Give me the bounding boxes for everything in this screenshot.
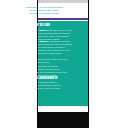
staticText: Leave it on for three minutes and then r… bbox=[38, 39, 73, 54]
staticText: STEP 1 bbox=[40, 28, 52, 31]
staticText: HOW TO USE bbox=[31, 23, 61, 27]
staticText: NATURAL INGREDIENTS bbox=[26, 76, 66, 79]
staticText: Contributes to the maintenance of the na… bbox=[19, 5, 69, 14]
staticText: STEP 2 bbox=[40, 39, 52, 42]
staticText: Apply a small amount to damp hair, massa… bbox=[38, 28, 73, 40]
staticText: For the best possible result we recommen… bbox=[24, 64, 69, 76]
staticText: Aqua, sodium laureth sulfate, cocamidopr… bbox=[24, 80, 69, 89]
staticText: Suitable for daily use on every hair typ… bbox=[24, 57, 69, 63]
